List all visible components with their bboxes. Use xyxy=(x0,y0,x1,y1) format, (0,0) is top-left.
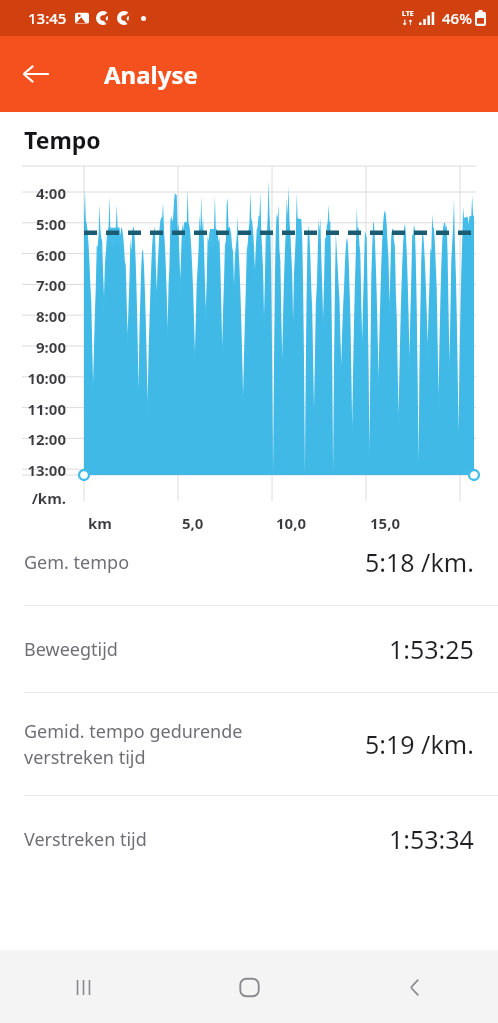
staticText: /km. xyxy=(0,488,66,508)
staticText: 1:53:25 xyxy=(389,632,474,666)
staticText: 10:00 xyxy=(0,368,66,388)
button[interactable]: Back xyxy=(384,956,446,1018)
staticText: 4:00 xyxy=(0,183,66,203)
staticText: LTE xyxy=(402,9,414,19)
staticText: 12:00 xyxy=(0,429,66,449)
button[interactable]: Verstreken tijd xyxy=(0,796,498,882)
staticText: km xyxy=(88,513,112,533)
staticText: 8:00 xyxy=(0,306,66,326)
staticText: ↓↑ xyxy=(402,19,414,27)
staticText: 13:45 xyxy=(28,8,67,28)
staticText: 46% xyxy=(442,8,472,28)
staticText: 5:18 /km. xyxy=(365,545,474,579)
button[interactable]: Gem. tempo xyxy=(0,519,498,605)
staticText: 9:00 xyxy=(0,337,66,357)
button[interactable]: Gemid. tempo gedurende verstreken tijd xyxy=(0,693,498,795)
staticText: Gemid. tempo gedurende verstreken tijd xyxy=(24,719,365,769)
staticText: 5:00 xyxy=(0,214,66,234)
staticText: 5:19 /km. xyxy=(365,727,474,761)
staticText: Analyse xyxy=(104,58,198,91)
staticText: 15,0 xyxy=(370,513,401,533)
button[interactable]: Home xyxy=(218,956,280,1018)
staticText: 13:00 xyxy=(0,460,66,480)
staticText: 5,0 xyxy=(182,513,204,533)
staticText: 6:00 xyxy=(0,245,66,265)
staticText: Beweegtijd xyxy=(24,637,389,662)
staticText: 10,0 xyxy=(276,513,307,533)
staticText: Tempo xyxy=(24,124,101,155)
button[interactable]: Back xyxy=(14,52,58,96)
staticText: 7:00 xyxy=(0,275,66,295)
staticText: 1:53:34 xyxy=(389,822,474,856)
button[interactable]: Recents xyxy=(52,956,114,1018)
staticText: Gem. tempo xyxy=(24,550,365,575)
button[interactable]: Beweegtijd xyxy=(0,606,498,692)
staticText: 11:00 xyxy=(0,399,66,419)
staticText: Verstreken tijd xyxy=(24,827,389,852)
